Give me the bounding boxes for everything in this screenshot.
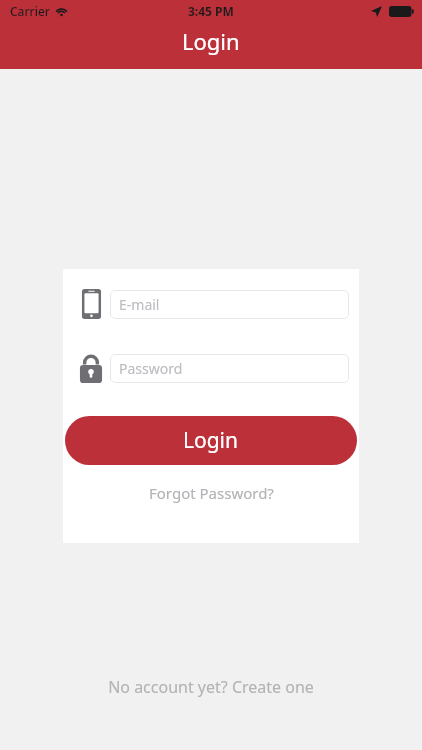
staticText: Carrier [10, 3, 50, 19]
staticText: Password [119, 359, 183, 378]
button[interactable]: Password [110, 354, 349, 383]
staticText: No account yet? Create one [108, 676, 314, 698]
staticText: E-mail [119, 295, 160, 314]
button[interactable]: No account yet? Create one [0, 672, 422, 702]
staticText: Forgot Password? [149, 483, 274, 503]
staticText: Login [182, 26, 240, 56]
button[interactable]: Forgot Password? [63, 478, 359, 508]
staticText: 3:45 PM [188, 3, 234, 19]
button[interactable]: E-mail [110, 290, 349, 319]
staticText: Login [183, 426, 239, 455]
button[interactable]: Login [65, 416, 357, 465]
